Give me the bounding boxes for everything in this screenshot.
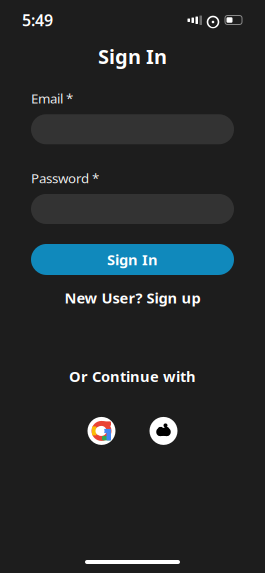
staticText: Sign In — [107, 250, 158, 269]
staticText: Sign In — [98, 43, 167, 70]
staticText: Email * — [31, 90, 73, 107]
button[interactable]: Continue with Google — [86, 416, 116, 446]
button[interactable]: Sign In — [31, 244, 234, 275]
staticText: Or Continue with — [69, 366, 196, 386]
button[interactable]: New User? Sign up — [31, 284, 234, 311]
staticText: Password * — [31, 169, 99, 187]
button[interactable]: Continue with Apple — [148, 416, 178, 446]
staticText: New User? Sign up — [64, 288, 200, 307]
staticText: 5:49 — [22, 9, 53, 31]
